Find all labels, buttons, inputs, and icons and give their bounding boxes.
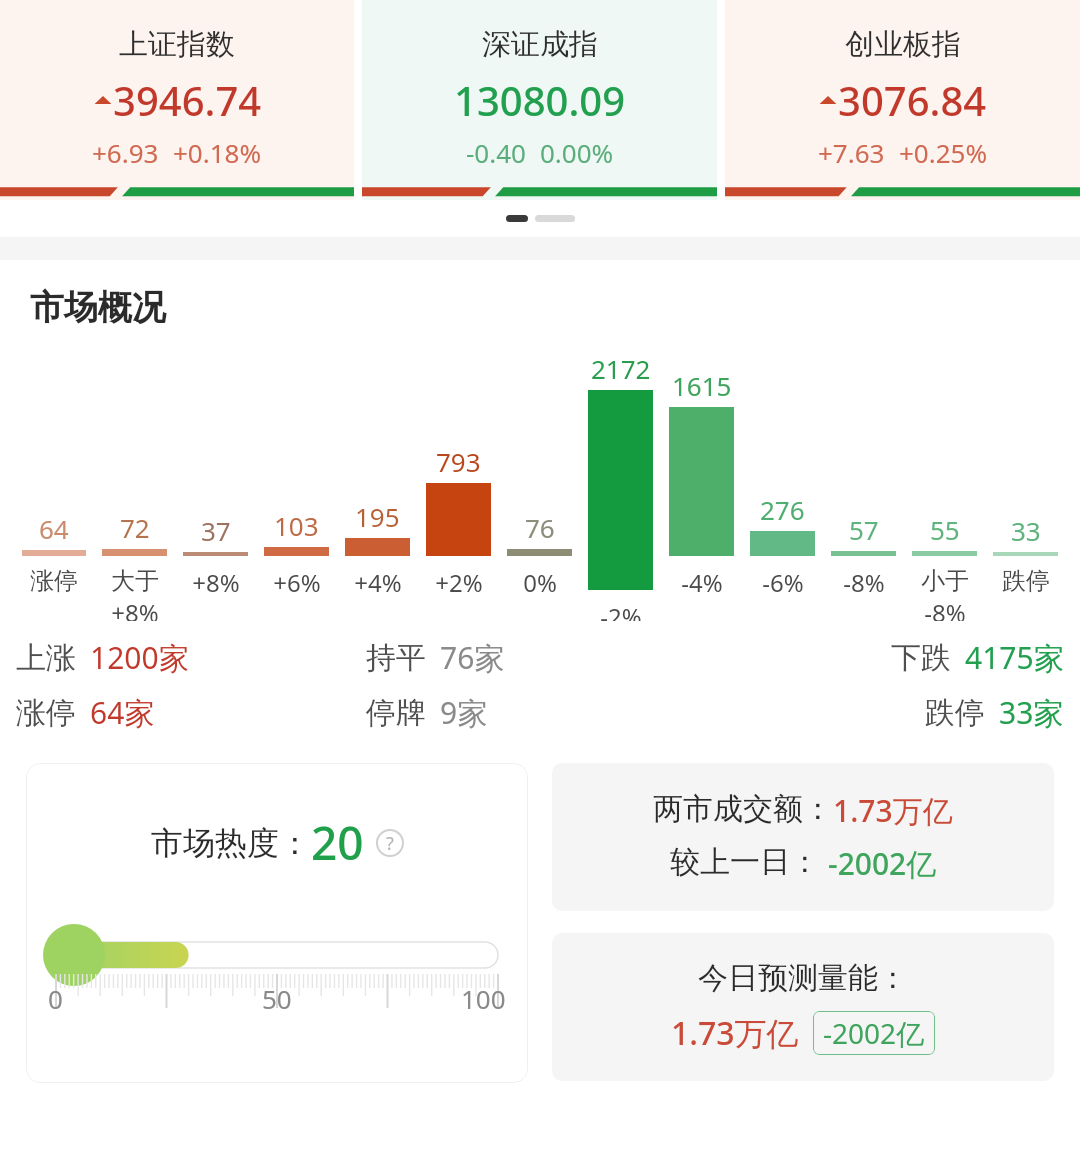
button[interactable]: 上证指数: [0, 0, 354, 200]
staticText: +0.18%: [173, 135, 262, 170]
staticText: +2%: [435, 566, 483, 599]
button[interactable]: 市场热度：: [26, 763, 528, 1083]
staticText: 停牌: [366, 694, 426, 732]
staticText: 72: [120, 510, 150, 545]
staticText: 33家: [999, 692, 1064, 733]
staticText: 持平: [366, 639, 426, 677]
staticText: 大于: [111, 566, 159, 596]
staticText: +8%: [111, 596, 159, 621]
staticText: 64家: [90, 692, 155, 733]
staticText: +8%: [192, 566, 240, 599]
staticText: 创业板指: [845, 26, 961, 63]
staticText: 两市成交额：: [653, 790, 833, 828]
staticText: 0: [48, 981, 63, 1016]
button[interactable]: 帮助: [376, 829, 404, 857]
staticText: 20: [311, 811, 364, 874]
staticText: +7.63: [818, 135, 885, 170]
staticText: 深证成指: [482, 26, 598, 63]
staticText: 下跌: [891, 639, 951, 677]
staticText: -6%: [762, 566, 804, 599]
staticText: 793: [436, 444, 481, 479]
staticText: 1.73万亿: [833, 790, 953, 831]
staticText: +6%: [273, 566, 321, 599]
staticText: -2%: [600, 600, 642, 621]
staticText: 涨停: [16, 694, 76, 732]
staticText: +4%: [354, 566, 402, 599]
staticText: 市场概况: [30, 286, 166, 329]
staticText: 13080.09: [454, 73, 626, 127]
staticText: 3076.84: [838, 73, 987, 127]
staticText: -4%: [681, 566, 723, 599]
staticText: -2002亿: [828, 843, 937, 884]
staticText: 50: [262, 981, 292, 1016]
staticText: 55: [930, 512, 960, 547]
staticText: -0.40: [466, 135, 526, 170]
staticText: 0%: [523, 566, 557, 599]
staticText: 195: [355, 499, 400, 534]
staticText: 100: [461, 981, 506, 1016]
staticText: -8%: [924, 596, 966, 621]
staticText: 9家: [440, 692, 488, 733]
staticText: 76: [525, 510, 555, 545]
staticText: 1615: [672, 368, 732, 403]
staticText: 276: [760, 492, 805, 527]
staticText: 较上一日：: [670, 843, 820, 881]
staticText: -2002亿: [823, 1014, 925, 1052]
button[interactable]: 深证成指: [362, 0, 717, 200]
staticText: +6.93: [92, 135, 159, 170]
staticText: 4175家: [965, 637, 1064, 678]
staticText: 上涨: [16, 639, 76, 677]
staticText: ?: [386, 831, 394, 856]
staticText: 1200家: [90, 637, 189, 678]
staticText: 涨停: [30, 566, 78, 596]
staticText: 0.00%: [540, 135, 614, 170]
staticText: 上证指数: [119, 26, 235, 63]
staticText: 57: [849, 512, 879, 547]
staticText: 今日预测量能：: [698, 959, 908, 997]
staticText: -8%: [843, 566, 885, 599]
staticText: 市场热度：: [151, 823, 311, 863]
staticText: 64: [39, 511, 69, 546]
staticText: 76家: [440, 637, 505, 678]
staticText: 33: [1011, 513, 1041, 548]
staticText: 3946.74: [113, 73, 262, 127]
staticText: 37: [201, 513, 231, 548]
staticText: 2172: [591, 351, 651, 386]
staticText: +0.25%: [899, 135, 988, 170]
staticText: 1.73万亿: [671, 1011, 799, 1055]
button[interactable]: 两市成交额：: [552, 763, 1054, 911]
staticText: 跌停: [1002, 566, 1050, 596]
button[interactable]: 今日预测量能：: [552, 933, 1054, 1081]
button[interactable]: 创业板指: [725, 0, 1080, 200]
staticText: 小于: [921, 566, 969, 596]
staticText: 103: [274, 508, 319, 543]
staticText: 跌停: [925, 694, 985, 732]
